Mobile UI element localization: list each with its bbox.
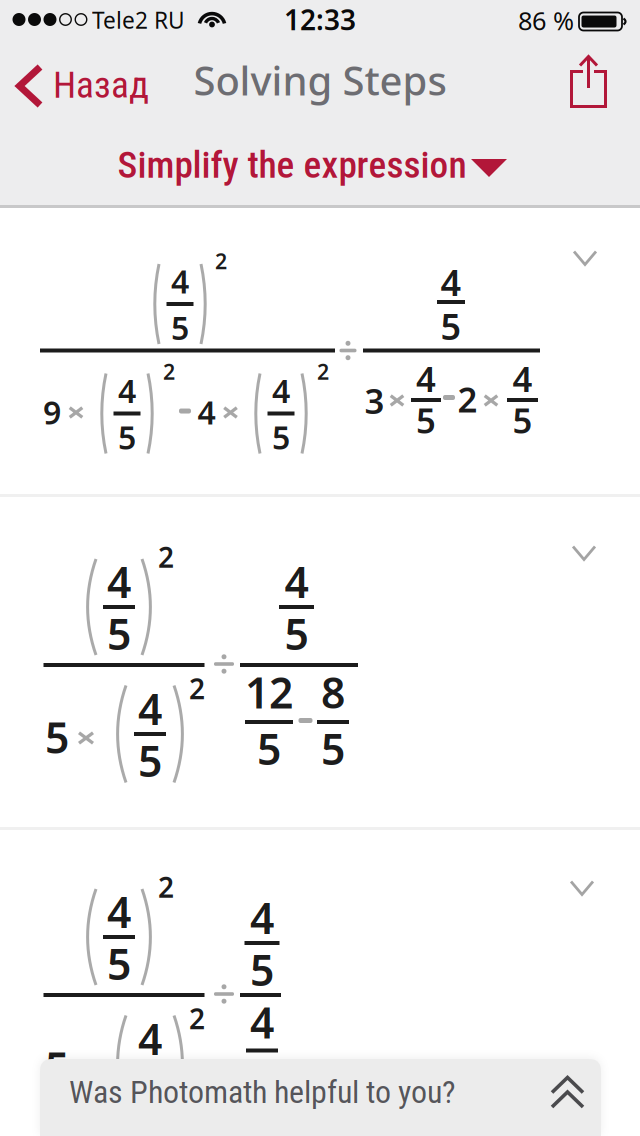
staticText: 2 bbox=[163, 357, 175, 386]
staticText: 5 bbox=[257, 720, 281, 777]
button[interactable]: Expand step bbox=[563, 243, 607, 273]
staticText: 4 bbox=[250, 994, 274, 1050]
button[interactable]: Share bbox=[558, 50, 618, 114]
staticText: 4 bbox=[250, 889, 274, 946]
staticText: 5 bbox=[250, 941, 274, 998]
staticText: 2 bbox=[457, 376, 477, 422]
staticText: 4 bbox=[138, 1010, 162, 1067]
staticText: 5 bbox=[138, 732, 162, 789]
staticText: 2 bbox=[158, 538, 174, 576]
staticText: 4 bbox=[272, 369, 290, 412]
staticText: 4 bbox=[171, 260, 189, 302]
staticText: Simplify the expression bbox=[117, 143, 466, 187]
staticText: 4 bbox=[512, 355, 532, 401]
staticText: 4 bbox=[416, 355, 436, 401]
staticText: 5 bbox=[118, 416, 136, 458]
staticText: 5 bbox=[440, 302, 461, 350]
staticText: 4 bbox=[107, 553, 131, 610]
staticText: Was Photomath helpful to you? bbox=[69, 1073, 456, 1111]
staticText: 5 bbox=[138, 1062, 162, 1119]
staticText: 2 bbox=[189, 670, 205, 707]
button[interactable]: Назад bbox=[16, 53, 166, 117]
staticText: 86 % bbox=[518, 4, 574, 37]
button[interactable]: Simplify the expression bbox=[110, 139, 510, 195]
staticText: 4 bbox=[138, 680, 162, 737]
staticText: Solving Steps bbox=[193, 53, 446, 106]
staticText: 8 bbox=[321, 664, 345, 720]
button[interactable]: Was Photomath helpful to you? bbox=[40, 1059, 601, 1136]
staticText: 4 bbox=[440, 258, 461, 306]
staticText: Tele2 RU bbox=[92, 5, 185, 35]
staticText: 5 bbox=[250, 1049, 274, 1105]
staticText: 4 bbox=[107, 883, 131, 940]
staticText: 2 bbox=[215, 247, 227, 275]
button[interactable]: Expand step bbox=[560, 873, 604, 903]
staticText: Назад bbox=[53, 63, 149, 107]
staticText: 12:33 bbox=[284, 1, 356, 38]
staticText: 5 bbox=[321, 720, 345, 777]
staticText: 4 bbox=[197, 391, 215, 433]
staticText: 9 bbox=[43, 391, 61, 433]
staticText: 5 bbox=[107, 605, 131, 662]
staticText: 12 bbox=[245, 664, 293, 720]
staticText: 5 bbox=[45, 1039, 69, 1095]
staticText: 2 bbox=[317, 357, 329, 386]
staticText: 5 bbox=[512, 397, 532, 443]
staticText: 5 bbox=[107, 935, 131, 992]
staticText: 5 bbox=[272, 416, 290, 458]
staticText: 5 bbox=[416, 397, 436, 443]
staticText: 4 bbox=[118, 369, 136, 412]
staticText: 2 bbox=[189, 1000, 205, 1037]
staticText: 5 bbox=[284, 605, 308, 662]
staticText: 4 bbox=[284, 553, 308, 610]
staticText: 5 bbox=[45, 709, 69, 765]
staticText: 3 bbox=[364, 377, 384, 423]
button[interactable]: Expand step bbox=[562, 538, 606, 568]
staticText: 2 bbox=[158, 868, 174, 906]
staticText: 5 bbox=[171, 306, 189, 349]
